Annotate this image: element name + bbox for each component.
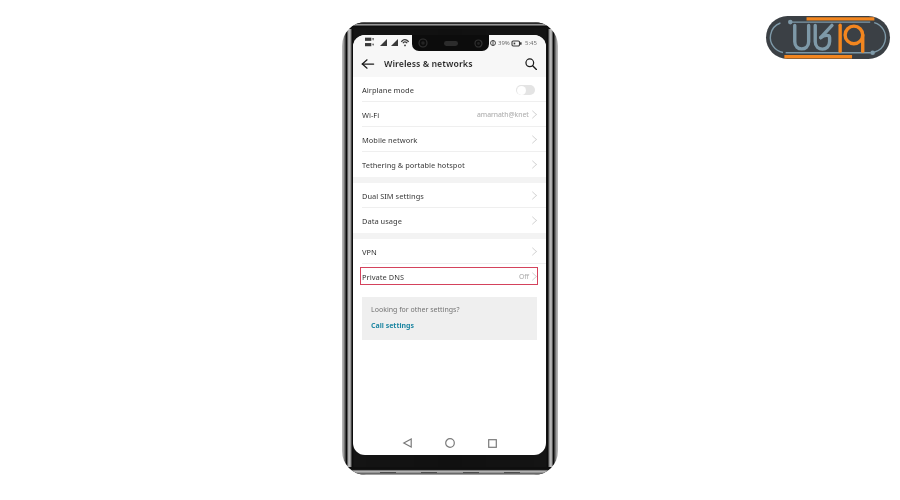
staticText: 5:45 xyxy=(525,39,537,47)
button[interactable]: VPN xyxy=(353,239,546,264)
button[interactable]: Mobile network xyxy=(353,127,546,152)
other: Site logo xyxy=(766,16,890,59)
button[interactable]: Search xyxy=(521,54,541,74)
button[interactable]: Dual SIM settings xyxy=(353,183,546,208)
button[interactable]: Tethering & portable hotspot xyxy=(353,152,546,177)
staticText: Airplane mode xyxy=(362,85,414,95)
staticText: Mobile network xyxy=(362,135,418,145)
button[interactable]: Airplane mode xyxy=(353,77,546,102)
button[interactable]: Back xyxy=(397,432,419,454)
staticText: Call settings xyxy=(371,321,415,331)
staticText: Private DNS xyxy=(362,272,404,282)
button[interactable]: Looking for other settings? xyxy=(362,297,537,340)
staticText: Data usage xyxy=(362,216,402,226)
staticText: Dual SIM settings xyxy=(362,191,424,201)
button[interactable]: Wi-Fi xyxy=(353,102,546,127)
staticText: Looking for other settings? xyxy=(371,305,460,315)
button[interactable]: Home xyxy=(439,432,461,454)
button[interactable]: Private DNS xyxy=(353,264,546,289)
staticText: Wireless & networks xyxy=(384,58,473,70)
staticText: Off xyxy=(519,272,529,281)
staticText: 39% xyxy=(498,39,510,47)
button[interactable]: Recents xyxy=(481,432,503,454)
staticText: amarnath@knet xyxy=(477,110,529,119)
staticText: Tethering & portable hotspot xyxy=(362,160,465,170)
button[interactable]: Data usage xyxy=(353,208,546,233)
staticText: Wi-Fi xyxy=(362,110,380,120)
button[interactable]: Back xyxy=(359,55,377,73)
staticText: VPN xyxy=(362,247,377,257)
